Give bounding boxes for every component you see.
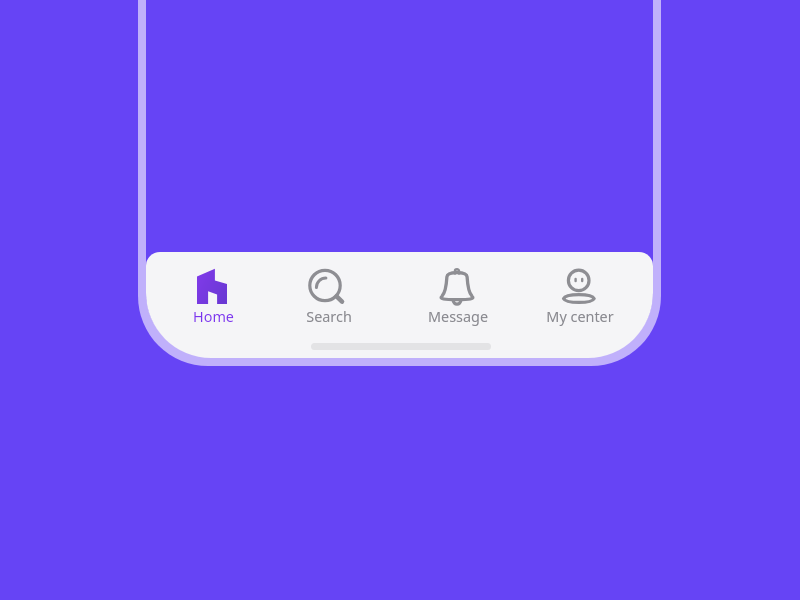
staticText: Message: [428, 307, 488, 327]
button[interactable]: Search: [276, 260, 382, 327]
button[interactable]: Message: [405, 260, 511, 327]
staticText: My center: [546, 307, 614, 327]
button[interactable]: My center: [527, 260, 633, 327]
staticText: Home: [193, 307, 234, 327]
button[interactable]: Home: [160, 260, 266, 327]
staticText: Search: [306, 307, 352, 327]
